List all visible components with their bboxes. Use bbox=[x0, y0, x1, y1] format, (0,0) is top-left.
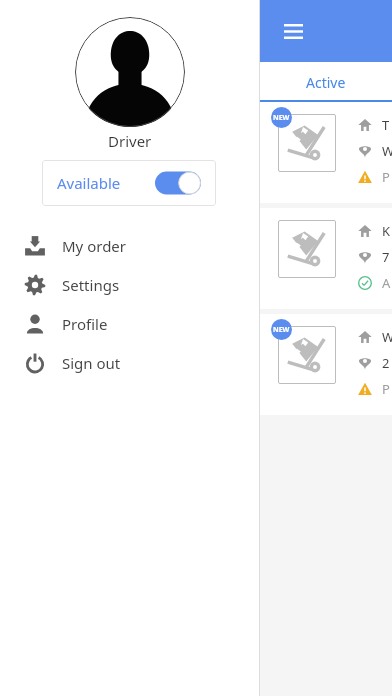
button[interactable]: My order bbox=[0, 226, 260, 265]
button[interactable]: Settings bbox=[0, 265, 260, 304]
staticText: Acc bbox=[382, 274, 392, 292]
staticText: Per bbox=[382, 168, 392, 186]
staticText: Driver bbox=[108, 131, 152, 151]
button[interactable]: KFC bbox=[260, 208, 392, 309]
staticText: Per bbox=[382, 380, 392, 398]
staticText: NEW bbox=[273, 113, 290, 123]
button[interactable]: The bbox=[260, 102, 392, 203]
staticText: Settings bbox=[62, 275, 120, 295]
staticText: Win bbox=[382, 142, 392, 160]
staticText: 71 bbox=[382, 248, 392, 266]
button[interactable]: Active bbox=[260, 62, 392, 102]
staticText: Sign out bbox=[62, 353, 121, 373]
staticText: 21 bbox=[382, 354, 392, 372]
button[interactable]: Profile bbox=[0, 304, 260, 343]
staticText: Win bbox=[382, 328, 392, 346]
staticText: The bbox=[382, 116, 392, 134]
staticText: My order bbox=[62, 236, 127, 256]
button[interactable]: Win bbox=[260, 314, 392, 415]
staticText: Active bbox=[306, 73, 346, 92]
staticText: NEW bbox=[273, 325, 290, 335]
button[interactable]: Open navigation menu bbox=[276, 14, 310, 48]
staticText: KFC bbox=[382, 222, 392, 240]
button[interactable]: Sign out bbox=[0, 343, 260, 382]
staticText: Available bbox=[57, 173, 121, 193]
button[interactable]: Available bbox=[42, 160, 216, 206]
staticText: Profile bbox=[62, 314, 108, 334]
